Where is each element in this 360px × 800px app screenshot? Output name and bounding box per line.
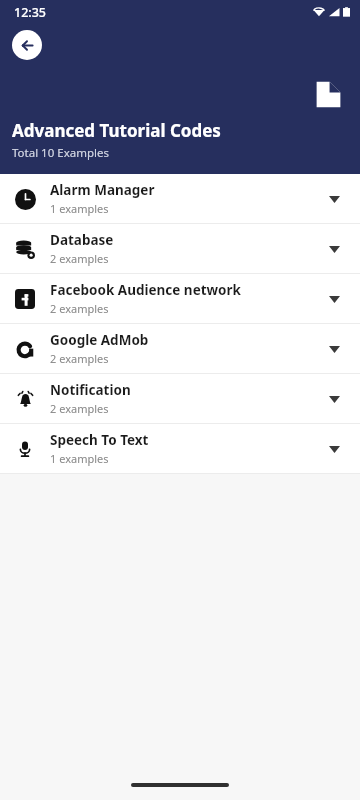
staticText: Database (50, 231, 114, 249)
staticText: Notification (50, 381, 131, 399)
staticText: Facebook Audience network (50, 281, 241, 299)
staticText: 2 examples (50, 301, 109, 316)
button[interactable]: Back (12, 30, 42, 60)
button[interactable]: Expand Facebook Audience network (320, 285, 348, 313)
button[interactable]: Google AdMob (0, 324, 360, 373)
staticText: Google AdMob (50, 331, 149, 349)
staticText: Advanced Tutorial Codes (12, 119, 221, 142)
button[interactable]: Database (0, 224, 360, 273)
staticText: 1 examples (50, 451, 109, 466)
staticText: Alarm Manager (50, 181, 155, 199)
staticText: 2 examples (50, 251, 109, 266)
staticText: 12:35 (14, 4, 47, 21)
staticText: 2 examples (50, 351, 109, 366)
staticText: Total 10 Examples (12, 145, 109, 161)
button[interactable]: Expand Notification (320, 385, 348, 413)
button[interactable]: Expand Alarm Manager (320, 185, 348, 213)
button[interactable]: Notification (0, 374, 360, 423)
staticText: Speech To Text (50, 431, 149, 449)
button[interactable]: Expand Google AdMob (320, 335, 348, 363)
button[interactable]: Speech To Text (0, 424, 360, 473)
button[interactable]: Alarm Manager (0, 174, 360, 223)
button[interactable]: Expand Speech To Text (320, 435, 348, 463)
staticText: 2 examples (50, 401, 109, 416)
staticText: 1 examples (50, 201, 109, 216)
button[interactable]: Facebook Audience network (0, 274, 360, 323)
button[interactable]: Document (312, 78, 344, 110)
button[interactable]: Expand Database (320, 235, 348, 263)
